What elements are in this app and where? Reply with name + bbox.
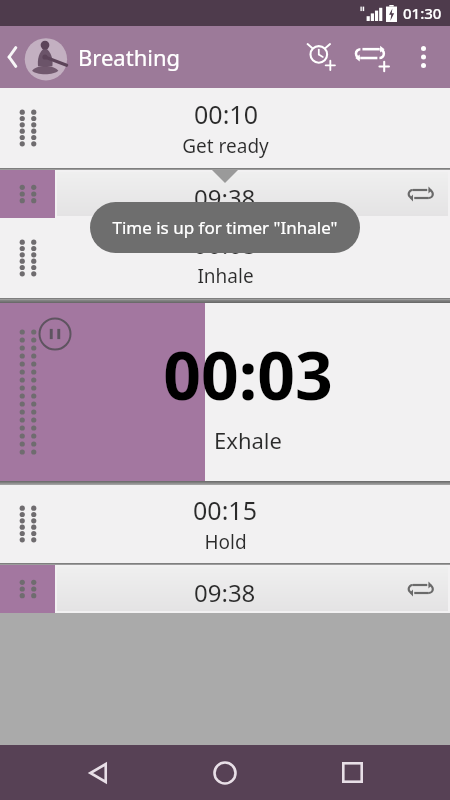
button[interactable]: 00:10 <box>0 88 450 168</box>
staticText: Exhale <box>214 425 282 455</box>
button[interactable]: Add group <box>348 31 400 83</box>
staticText: Get ready <box>182 133 269 159</box>
button[interactable]: Loop group <box>404 572 438 606</box>
button[interactable]: Pause <box>0 303 450 481</box>
staticText: 01:30 <box>403 3 442 23</box>
button[interactable]: Navigate up <box>0 28 72 86</box>
button[interactable]: 09:38 <box>0 170 450 218</box>
button[interactable]: 00:05 <box>0 218 450 298</box>
button[interactable]: Home <box>197 745 253 800</box>
button[interactable]: Loop group <box>404 177 438 211</box>
button[interactable]: 09:38 <box>0 565 450 613</box>
staticText: Hold <box>204 529 247 555</box>
staticText: Time is up for timer "Inhale" <box>112 216 338 239</box>
staticText: 00:05 <box>193 227 257 261</box>
staticText: 00:03 <box>163 329 333 419</box>
staticText: Inhale <box>197 263 254 289</box>
staticText: 09:38 <box>194 181 256 214</box>
staticText: Breathing <box>78 42 181 72</box>
button[interactable]: More options <box>400 34 446 80</box>
staticText: 00:15 <box>193 493 257 527</box>
button[interactable]: Pause <box>38 317 72 351</box>
button[interactable]: 00:15 <box>0 485 450 563</box>
button[interactable]: Add timer <box>296 31 348 83</box>
staticText: 00:10 <box>194 97 258 131</box>
button[interactable]: Back <box>71 745 127 800</box>
button[interactable]: Recent apps <box>324 745 380 800</box>
staticText: 09:38 <box>194 576 256 609</box>
